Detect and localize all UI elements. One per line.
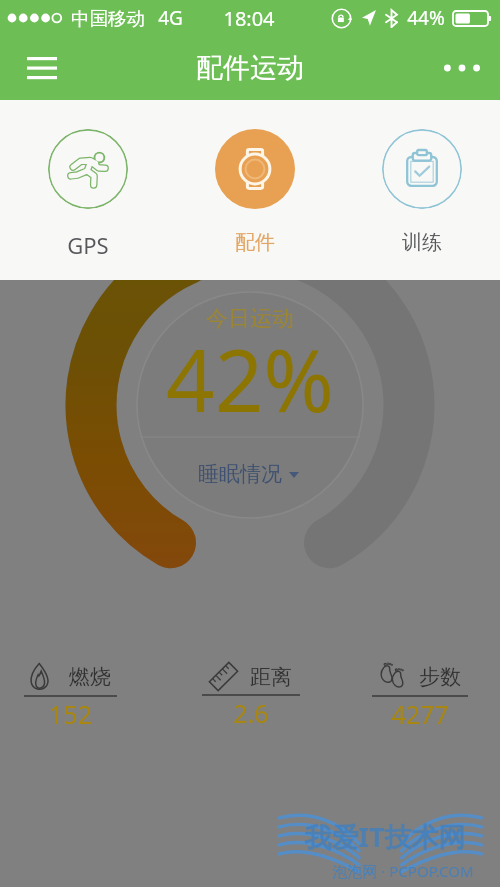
button[interactable]: More options [438,44,486,92]
staticText: GPS [67,230,109,260]
staticText: 42% [166,321,334,437]
staticText: 18:04 [223,5,275,32]
staticText: 我爱IT技术网 [304,818,466,855]
staticText: 配件运动 [196,51,304,85]
button[interactable]: 距离 [202,663,300,730]
staticText: 4G [158,5,183,31]
staticText: 步数 [419,664,461,690]
button[interactable]: 训练 [338,100,500,280]
button[interactable]: 燃烧 [24,663,117,731]
button[interactable]: Menu [18,44,66,92]
staticText: 44% [407,5,445,31]
staticText: 泡泡网 · PCPOP.COM [332,861,474,881]
staticText: 今日运动 [206,305,294,333]
button[interactable]: 步数 [372,663,468,731]
staticText: 距离 [250,664,292,690]
staticText: 4277 [391,697,449,731]
staticText: 2.6 [233,696,269,730]
staticText: 配件 [235,230,275,255]
staticText: 152 [49,697,92,731]
staticText: 训练 [402,230,442,255]
staticText: 中国移动 [71,7,145,30]
staticText: 睡眠情况 [198,461,282,487]
button[interactable]: 配件 [171,100,338,280]
staticText: 燃烧 [69,664,111,690]
button[interactable]: GPS [5,100,171,280]
button[interactable]: 睡眠情况 [198,461,299,487]
